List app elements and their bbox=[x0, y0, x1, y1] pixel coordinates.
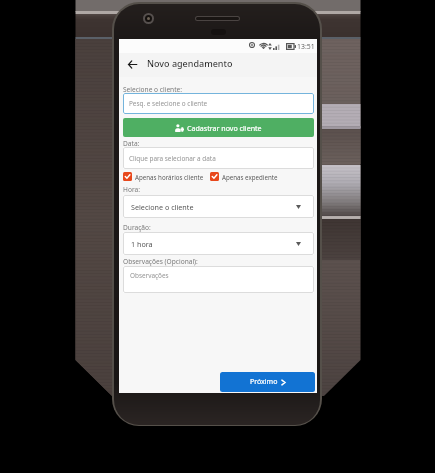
staticText: Selecione o cliente: bbox=[123, 85, 183, 94]
button[interactable]: Próximo bbox=[220, 372, 315, 392]
button[interactable]: Observações bbox=[123, 266, 314, 293]
staticText: Clique para selecionar a data bbox=[129, 154, 216, 163]
button[interactable]: Clique para selecionar a data bbox=[123, 147, 314, 169]
staticText: Próximo bbox=[250, 377, 278, 387]
button[interactable]: Selecione o cliente bbox=[123, 195, 314, 218]
staticText: Data: bbox=[123, 139, 140, 148]
staticText: Duração: bbox=[123, 223, 151, 232]
button[interactable]: 1 hora bbox=[123, 232, 314, 255]
staticText: Observações bbox=[130, 271, 169, 280]
staticText: Cadastrar novo cliente bbox=[187, 123, 262, 133]
button[interactable]: Cadastrar novo cliente bbox=[123, 118, 314, 137]
staticText: Apenas horários cliente bbox=[135, 173, 204, 181]
staticText: 1 hora bbox=[131, 239, 153, 249]
staticText: Apenas expediente bbox=[222, 173, 278, 181]
staticText: Novo agendamento bbox=[147, 57, 233, 69]
staticText: Pesq. e selecione o cliente bbox=[129, 99, 208, 108]
button[interactable]: Back bbox=[123, 55, 142, 74]
button[interactable]: Apenas horários cliente bbox=[123, 172, 204, 181]
staticText: Selecione o cliente bbox=[131, 202, 194, 212]
button[interactable]: Pesq. e selecione o cliente bbox=[123, 93, 314, 114]
staticText: Hora: bbox=[123, 185, 140, 194]
button[interactable]: Apenas expediente bbox=[210, 172, 278, 181]
staticText: 13:51 bbox=[297, 42, 315, 51]
staticText: Observações (Opcional): bbox=[123, 257, 198, 266]
